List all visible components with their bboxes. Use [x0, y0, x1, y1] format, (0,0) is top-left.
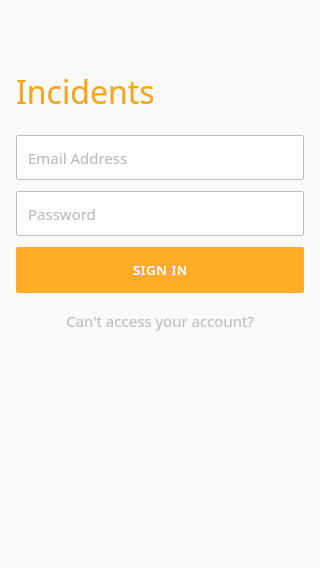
button[interactable]: Password: [16, 191, 304, 236]
button[interactable]: Can't access your account?: [16, 305, 304, 337]
button[interactable]: SIGN IN: [16, 247, 304, 293]
staticText: Password: [28, 204, 96, 224]
staticText: Incidents: [16, 70, 155, 114]
staticText: Can't access your account?: [66, 311, 254, 331]
button[interactable]: Email Address: [16, 135, 304, 180]
staticText: SIGN IN: [133, 261, 188, 279]
staticText: Email Address: [28, 148, 128, 168]
